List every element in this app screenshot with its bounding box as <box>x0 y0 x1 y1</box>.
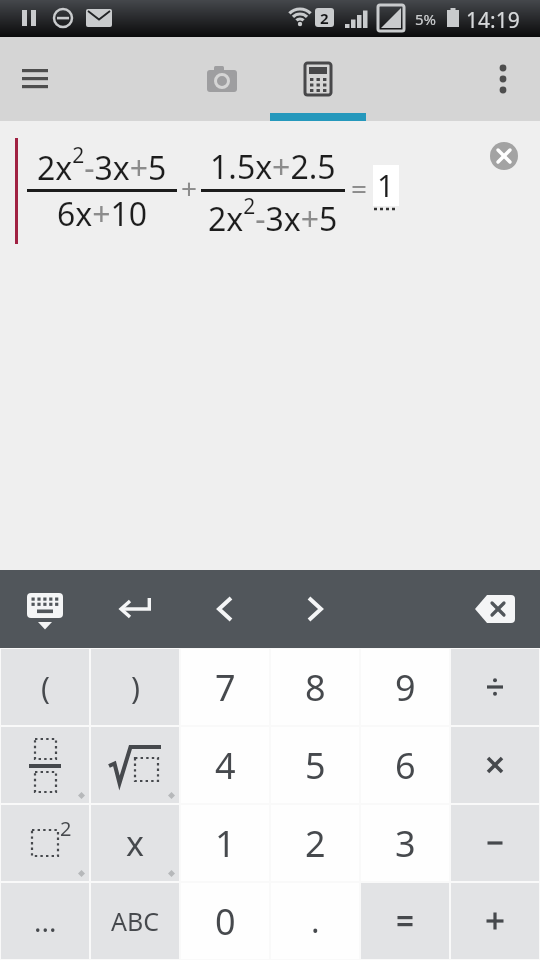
staticText: . <box>311 899 320 943</box>
button[interactable] <box>270 570 360 648</box>
button[interactable]: ABC <box>91 883 179 959</box>
button[interactable] <box>180 570 270 648</box>
button[interactable]: ... <box>1 883 89 959</box>
button[interactable]: 4 <box>181 727 269 803</box>
staticText: 7 <box>215 663 236 712</box>
button[interactable] <box>91 727 179 803</box>
staticText: 4 <box>215 741 236 790</box>
staticText: x <box>126 820 144 866</box>
staticText: 8 <box>305 663 326 712</box>
staticText: 0 <box>215 897 236 946</box>
staticText: 9 <box>395 663 416 712</box>
button[interactable] <box>451 649 539 725</box>
staticText: 5 <box>305 741 326 790</box>
staticText: ( <box>41 667 50 708</box>
button[interactable]: ) <box>91 649 179 725</box>
button[interactable] <box>270 37 366 121</box>
button[interactable]: 5 <box>271 727 359 803</box>
staticText: 1.5x+2.5 <box>210 145 336 189</box>
button[interactable]: 3 <box>361 805 449 881</box>
button[interactable] <box>490 142 518 170</box>
staticText: 2 <box>320 8 329 27</box>
button[interactable]: x <box>91 805 179 881</box>
button[interactable] <box>1 727 89 803</box>
staticText: ... <box>34 902 57 940</box>
button[interactable]: . <box>271 883 359 959</box>
staticText: 2 <box>60 815 72 842</box>
staticText: 2x2-3x+5 <box>208 192 338 240</box>
button[interactable] <box>12 55 60 103</box>
staticText: + <box>181 169 198 207</box>
staticText: 14:19 <box>466 6 520 35</box>
button[interactable]: 2 <box>1 805 89 881</box>
button[interactable] <box>450 570 540 648</box>
staticText: 5% <box>415 9 437 29</box>
button[interactable] <box>90 570 180 648</box>
button[interactable] <box>361 883 449 959</box>
staticText: 1 <box>377 165 395 206</box>
staticText: 6 <box>395 741 416 790</box>
button[interactable]: 9 <box>361 649 449 725</box>
button[interactable] <box>0 570 90 648</box>
staticText: ) <box>131 667 140 708</box>
button[interactable]: ( <box>1 649 89 725</box>
staticText: 2 <box>305 819 326 868</box>
staticText: 3 <box>395 819 416 868</box>
button[interactable] <box>451 883 539 959</box>
button[interactable]: 6 <box>361 727 449 803</box>
staticText: 2x2-3x+5 <box>37 141 167 189</box>
button[interactable] <box>451 727 539 803</box>
button[interactable]: 2 <box>271 805 359 881</box>
button[interactable] <box>174 37 270 121</box>
button[interactable]: 0 <box>181 883 269 959</box>
staticText: = <box>351 169 368 207</box>
staticText: 1 <box>215 819 236 868</box>
button[interactable]: 7 <box>181 649 269 725</box>
button[interactable]: 8 <box>271 649 359 725</box>
staticText: 6x+10 <box>57 192 148 236</box>
button[interactable] <box>479 55 527 103</box>
button[interactable]: 1 <box>181 805 269 881</box>
staticText: ABC <box>111 904 160 938</box>
button[interactable] <box>451 805 539 881</box>
